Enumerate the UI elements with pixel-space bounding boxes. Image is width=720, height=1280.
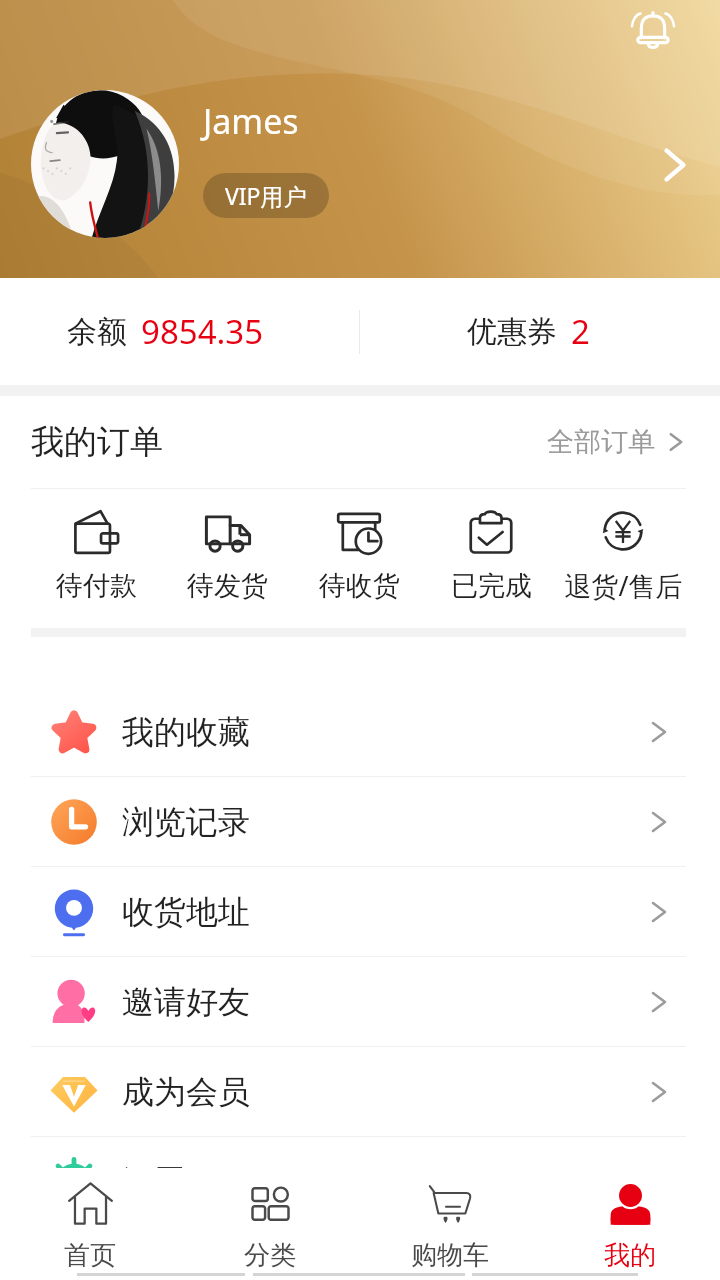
button[interactable]: 浏览记录 xyxy=(0,777,720,866)
button[interactable]: 优惠券 xyxy=(360,278,720,385)
button[interactable]: 成为会员 xyxy=(0,1047,720,1136)
staticText: 首页 xyxy=(64,1239,116,1270)
button[interactable]: 待发货 xyxy=(162,505,293,603)
button[interactable]: 待付款 xyxy=(31,505,162,603)
staticText: 待付款 xyxy=(56,569,137,603)
staticText: 我的收藏 xyxy=(122,712,250,752)
button[interactable]: 待收货 xyxy=(293,505,425,603)
staticText: 全部订单 xyxy=(547,425,655,459)
staticText: 邀请好友 xyxy=(122,982,250,1022)
button[interactable]: 分类 xyxy=(180,1168,360,1270)
button[interactable]: 余额 xyxy=(0,278,359,385)
staticText: 收货地址 xyxy=(122,892,250,932)
staticText: 我的订单 xyxy=(31,421,163,463)
button[interactable]: VIP用户 xyxy=(203,173,329,218)
button[interactable] xyxy=(31,90,179,238)
button[interactable]: 全部订单 xyxy=(547,425,689,459)
button[interactable]: 我的 xyxy=(540,1168,720,1270)
staticText: 9854.35 xyxy=(141,309,264,354)
staticText: 优惠券 xyxy=(467,313,557,351)
button[interactable]: 购物车 xyxy=(360,1168,540,1270)
button[interactable]: Profile details xyxy=(657,145,697,185)
staticText: 待发货 xyxy=(187,569,268,603)
staticText: 分类 xyxy=(244,1239,296,1270)
staticText: 设置 xyxy=(122,1162,186,1202)
staticText: 待收货 xyxy=(319,569,400,603)
staticText: VIP用户 xyxy=(225,180,307,211)
staticText: James xyxy=(203,98,299,144)
staticText: 浏览记录 xyxy=(122,802,250,842)
button[interactable]: Notifications xyxy=(631,9,675,53)
button[interactable]: 退货/售后 xyxy=(557,503,689,604)
staticText: 余额 xyxy=(67,313,127,351)
staticText: 已完成 xyxy=(451,569,532,603)
staticText: 购物车 xyxy=(411,1239,489,1270)
button[interactable]: 邀请好友 xyxy=(0,957,720,1046)
button[interactable]: 设置 xyxy=(0,1137,720,1226)
staticText: 退货/售后 xyxy=(564,567,683,604)
staticText: 我的 xyxy=(604,1239,656,1270)
button[interactable]: 首页 xyxy=(0,1168,180,1270)
button[interactable]: 已完成 xyxy=(425,505,557,603)
button[interactable]: 收货地址 xyxy=(0,867,720,956)
staticText: 2 xyxy=(571,309,590,354)
button[interactable]: 我的收藏 xyxy=(0,687,720,776)
staticText: 成为会员 xyxy=(122,1072,250,1112)
